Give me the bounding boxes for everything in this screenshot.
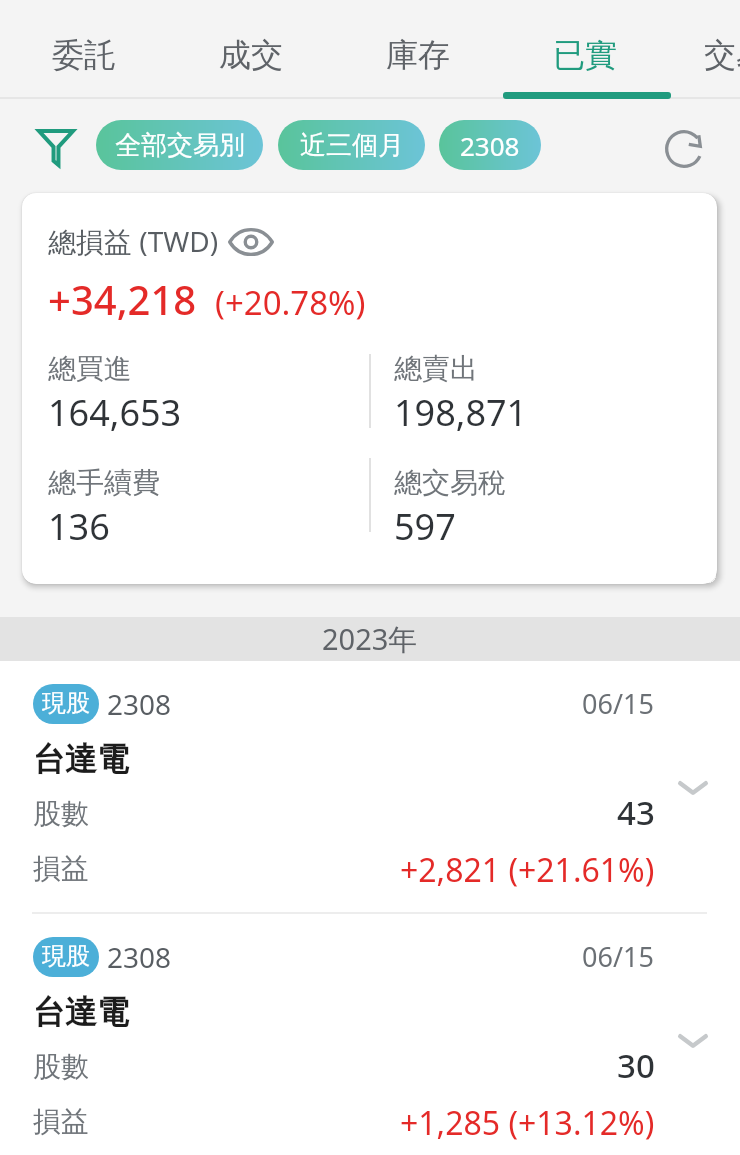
button[interactable]: Refresh [655,120,713,178]
staticText: 597 [394,502,456,551]
staticText: 2308 [107,938,172,976]
staticText: 損益 [33,851,89,886]
staticText: 近三個月 [300,129,404,162]
staticText: 股數 [33,1049,89,1084]
staticText: 2023年 [322,619,418,659]
staticText: 成交 [219,35,283,75]
staticText: 委託 [52,35,116,75]
staticText: 股數 [33,796,89,831]
staticText: 總損益 (TWD) [48,222,219,260]
button[interactable]: 近三個月 [278,120,425,170]
staticText: 06/15 [582,938,654,975]
staticText: 06/15 [582,685,654,722]
staticText: 30 [617,1043,655,1088]
button[interactable]: 2308 [439,120,541,170]
button[interactable]: 現股 [0,914,740,1155]
staticText: 總手續費 [48,465,160,500]
staticText: +1,285 (+13.12%) [400,1101,655,1145]
button[interactable]: 現股 [0,661,740,912]
staticText: (+20.78%) [215,280,366,325]
staticText: 台達電 [33,992,129,1032]
staticText: 43 [617,790,655,835]
staticText: +34,218 [48,272,197,326]
staticText: 已實 [553,35,617,75]
staticText: 總買進 [48,351,132,386]
button[interactable]: Expand details [668,763,718,813]
staticText: 164,653 [48,388,182,437]
button[interactable]: Expand details [668,1016,718,1066]
button[interactable]: 已實 [501,0,668,97]
staticText: 交易明 [704,35,740,75]
staticText: 136 [48,502,110,551]
staticText: 2308 [460,128,520,163]
staticText: 台達電 [33,739,129,779]
staticText: 現股 [42,941,90,971]
staticText: 現股 [42,688,90,718]
button[interactable]: 全部交易別 [96,120,263,170]
button[interactable]: 庫存 [334,0,501,97]
staticText: 全部交易別 [115,129,245,162]
button[interactable]: Toggle total profit visibility [224,215,278,269]
button[interactable]: 成交 [167,0,334,97]
staticText: 198,871 [394,388,528,437]
button[interactable]: Filter [27,119,85,177]
staticText: +2,821 (+21.61%) [400,848,655,892]
staticText: 庫存 [386,35,450,75]
button[interactable]: 委託 [0,0,167,97]
button[interactable]: 交易明 [668,0,740,97]
staticText: 損益 [33,1104,89,1139]
staticText: 總賣出 [394,351,478,386]
staticText: 2308 [107,685,172,723]
staticText: 總交易稅 [394,465,506,500]
